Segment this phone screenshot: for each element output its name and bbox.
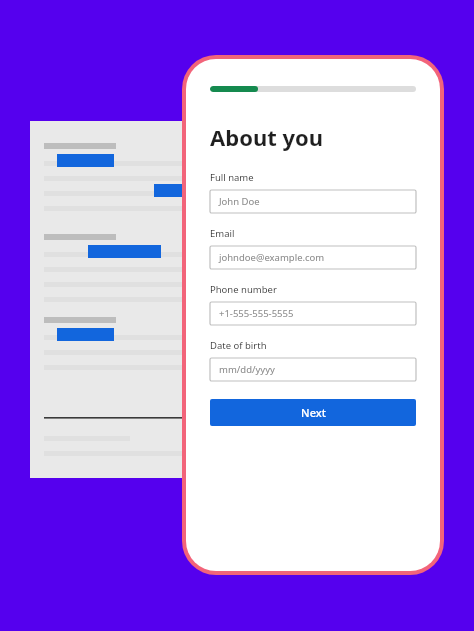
staticText: Next [301,405,326,420]
button[interactable]: John Doe [210,190,416,213]
staticText: mm/dd/yyyy [219,363,275,376]
staticText: Phone number [210,283,277,296]
staticText: About you [210,122,324,152]
staticText: Date of birth [210,339,267,352]
staticText: John Doe [219,195,260,208]
staticText: +1-555-555-5555 [219,307,294,320]
staticText: johndoe@example.com [219,251,325,264]
staticText: Full name [210,171,254,184]
button[interactable]: mm/dd/yyyy [210,358,416,381]
staticText: Email [210,227,235,240]
button[interactable]: +1-555-555-5555 [210,302,416,325]
button[interactable]: Next [210,399,416,426]
button[interactable]: johndoe@example.com [210,246,416,269]
